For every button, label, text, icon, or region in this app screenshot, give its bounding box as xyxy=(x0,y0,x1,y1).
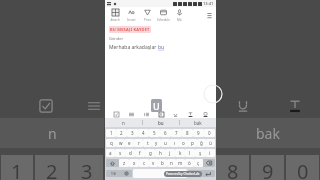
button[interactable]: ç xyxy=(194,159,203,167)
button[interactable]: o xyxy=(179,139,188,147)
staticText: 6 xyxy=(164,130,167,136)
button[interactable]: u xyxy=(161,139,170,147)
button[interactable]: i xyxy=(205,149,215,157)
staticText: n xyxy=(48,124,57,143)
button[interactable]: n xyxy=(105,118,142,127)
button[interactable]: j xyxy=(165,149,175,157)
button[interactable]: z xyxy=(119,159,129,167)
button[interactable]: ğ xyxy=(197,139,206,147)
button[interactable]: n xyxy=(167,159,176,167)
button[interactable]: d xyxy=(125,149,135,157)
button[interactable]: q xyxy=(106,139,116,147)
button[interactable]: Enter xyxy=(200,170,215,177)
button[interactable]: Mic xyxy=(171,7,187,22)
button[interactable]: w xyxy=(116,139,125,147)
button[interactable]: g xyxy=(145,149,155,157)
button[interactable]: k xyxy=(175,149,185,157)
staticText: h xyxy=(159,150,162,156)
button[interactable]: Attach option 2 xyxy=(127,110,135,118)
button[interactable]: a xyxy=(106,149,115,157)
button[interactable]: s xyxy=(115,149,125,157)
button[interactable]: h xyxy=(155,149,165,157)
button[interactable]: r xyxy=(134,139,143,147)
button[interactable]: ş xyxy=(195,149,205,157)
button[interactable]: 6 xyxy=(160,129,171,137)
button[interactable]: bu xyxy=(143,118,179,127)
staticText: 2 xyxy=(46,158,58,180)
button[interactable]: Insert xyxy=(123,7,139,22)
button[interactable]: 1 xyxy=(106,129,116,137)
button[interactable]: More options xyxy=(204,10,214,20)
staticText: v xyxy=(152,160,155,166)
staticText: 8 xyxy=(227,158,239,180)
button[interactable]: 9 xyxy=(193,129,204,137)
button[interactable]: 7 xyxy=(171,129,182,137)
staticText: e xyxy=(128,140,131,146)
button[interactable]: Attach xyxy=(107,7,123,22)
button[interactable]: c xyxy=(139,159,149,167)
button[interactable]: 2 xyxy=(116,129,127,137)
staticText: 4 xyxy=(142,130,145,136)
button[interactable]: Prior xyxy=(139,7,155,22)
button[interactable]: f xyxy=(135,149,145,157)
staticText: bak xyxy=(256,124,280,143)
staticText: Prior xyxy=(144,18,151,22)
button[interactable]: Attach option 1 xyxy=(112,110,120,118)
button[interactable]: l xyxy=(185,149,195,157)
button[interactable]: Attach option 3 xyxy=(142,110,150,118)
staticText: x xyxy=(133,160,136,166)
staticText: z xyxy=(123,160,126,166)
button[interactable]: BU MESAJI KAYDET xyxy=(110,27,150,32)
button[interactable]: 5 xyxy=(149,129,160,137)
button[interactable]: x xyxy=(129,159,139,167)
staticText: o xyxy=(182,140,185,146)
staticText: ı xyxy=(174,140,176,146)
button[interactable]: Period xyxy=(188,170,200,177)
button[interactable]: e xyxy=(125,139,134,147)
staticText: 1 xyxy=(11,158,23,180)
button[interactable]: Attach option 5 xyxy=(171,110,179,118)
button[interactable]: Space xyxy=(133,169,187,178)
staticText: 3 xyxy=(81,158,93,180)
staticText: 0 xyxy=(297,158,309,180)
button[interactable]: ö xyxy=(185,159,194,167)
staticText: ş xyxy=(199,150,202,156)
staticText: Mic xyxy=(177,18,182,22)
staticText: 0 xyxy=(208,130,211,136)
button[interactable]: Attach option 7 xyxy=(201,110,209,118)
button[interactable]: p xyxy=(188,139,197,147)
button[interactable]: 4 xyxy=(138,129,149,137)
button[interactable]: 3 xyxy=(127,129,138,137)
button[interactable]: Schedule xyxy=(155,7,171,22)
staticText: l xyxy=(189,150,191,156)
button[interactable]: m xyxy=(176,159,185,167)
button[interactable]: 8 xyxy=(182,129,193,137)
button[interactable]: symbols xyxy=(106,170,120,177)
staticText: 3 xyxy=(131,130,134,136)
button[interactable]: y xyxy=(152,139,161,147)
button[interactable]: ı xyxy=(170,139,179,147)
staticText: 13:41 xyxy=(203,1,214,6)
staticText: Insert xyxy=(127,18,136,22)
staticText: U xyxy=(153,100,160,112)
staticText: bu xyxy=(158,120,164,126)
staticText: s xyxy=(119,150,122,156)
button[interactable]: shift xyxy=(106,159,119,167)
staticText: b xyxy=(161,160,164,166)
staticText: bak xyxy=(194,120,202,126)
staticText: bu xyxy=(158,44,165,51)
staticText: t xyxy=(147,140,149,146)
staticText: d xyxy=(129,150,132,156)
button[interactable]: 0 xyxy=(204,129,215,137)
button[interactable]: backspace xyxy=(203,159,215,167)
staticText: a xyxy=(109,150,112,156)
button[interactable]: b xyxy=(158,159,167,167)
button[interactable]: Attach option 6 xyxy=(186,110,194,118)
button[interactable]: bak xyxy=(180,118,216,127)
button[interactable]: t xyxy=(143,139,152,147)
button[interactable]: ü xyxy=(206,139,215,147)
button[interactable]: Settings xyxy=(120,170,132,177)
staticText: 1 xyxy=(110,130,113,136)
button[interactable]: v xyxy=(149,159,158,167)
button[interactable]: Attach option 4 xyxy=(157,110,165,118)
